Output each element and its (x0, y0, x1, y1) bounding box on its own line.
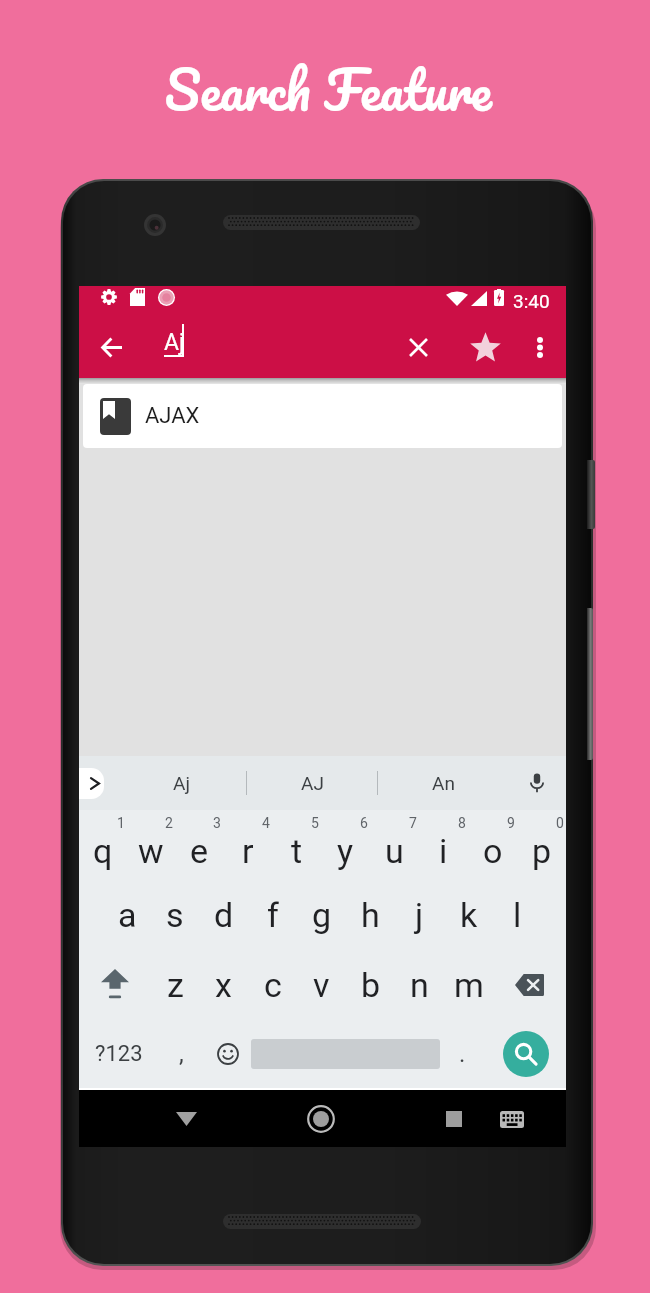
staticText: a (118, 895, 137, 935)
staticText: 9 (507, 815, 515, 831)
button[interactable]: 7 (370, 810, 419, 880)
button[interactable]: 0 (517, 810, 566, 880)
staticText: t (291, 831, 303, 871)
button[interactable]: Favourite (463, 325, 507, 369)
staticText: 3:40 (513, 290, 550, 312)
button[interactable]: ?123 (79, 1020, 159, 1088)
staticText: d (214, 895, 234, 935)
staticText: h (361, 895, 380, 935)
button[interactable]: Backspace (493, 950, 566, 1020)
staticText: k (460, 895, 478, 935)
staticText: b (361, 965, 381, 1005)
button[interactable]: b (346, 950, 395, 1020)
button[interactable]: Hide keyboard (158, 1091, 214, 1147)
button[interactable]: Expand suggestions (79, 768, 104, 799)
button[interactable]: l (493, 880, 542, 950)
staticText: c (264, 965, 282, 1005)
staticText: g (312, 895, 332, 935)
button[interactable]: AJ (247, 756, 377, 810)
staticText: 6 (360, 815, 368, 831)
button[interactable]: 4 (223, 810, 272, 880)
button[interactable]: Voice input (508, 756, 566, 810)
button[interactable]: Shift (79, 950, 151, 1020)
button[interactable]: 8 (419, 810, 468, 880)
staticText: 5 (311, 815, 319, 831)
button[interactable]: f (248, 880, 297, 950)
staticText: 3 (213, 815, 221, 831)
button[interactable]: s (151, 880, 199, 950)
staticText: AJ (301, 772, 324, 794)
button[interactable]: Search (485, 1020, 566, 1088)
button[interactable]: , (159, 1020, 204, 1088)
button[interactable]: n (395, 950, 444, 1020)
button[interactable]: z (151, 950, 199, 1020)
button[interactable]: Aj (117, 756, 246, 810)
staticText: 7 (409, 815, 417, 831)
button[interactable]: Space (251, 1020, 440, 1088)
button[interactable]: d (199, 880, 248, 950)
button[interactable]: 9 (468, 810, 517, 880)
button[interactable]: a (103, 880, 151, 950)
staticText: Aj (173, 772, 190, 794)
staticText: s (166, 895, 184, 935)
staticText: 4 (262, 815, 270, 831)
button[interactable]: h (346, 880, 395, 950)
button[interactable]: 1 (79, 810, 127, 880)
staticText: y (337, 831, 354, 871)
staticText: An (432, 772, 455, 794)
button[interactable]: Recents (426, 1091, 482, 1147)
staticText: . (459, 1040, 466, 1068)
button[interactable]: 3 (175, 810, 223, 880)
staticText: v (313, 965, 330, 1005)
staticText: u (385, 831, 404, 871)
staticText: x (215, 965, 232, 1005)
button[interactable]: j (395, 880, 444, 950)
staticText: 0 (556, 815, 564, 831)
staticText: AJAX (145, 403, 200, 429)
staticText: l (513, 895, 522, 935)
button[interactable]: Back (89, 325, 134, 370)
staticText: w (138, 831, 164, 871)
button[interactable]: 6 (321, 810, 370, 880)
button[interactable]: Home (293, 1091, 349, 1147)
staticText: j (415, 895, 424, 935)
button[interactable]: k (444, 880, 493, 950)
button[interactable]: An (378, 756, 508, 810)
staticText: , (179, 1040, 184, 1068)
staticText: z (167, 965, 184, 1005)
staticText: q (93, 831, 113, 871)
button[interactable]: More options (518, 325, 562, 369)
staticText: m (454, 965, 484, 1005)
button[interactable]: 5 (272, 810, 321, 880)
staticText: i (439, 831, 448, 871)
staticText: 8 (458, 815, 466, 831)
button[interactable]: AJAX (83, 384, 562, 448)
staticText: 2 (165, 815, 173, 831)
staticText: n (410, 965, 429, 1005)
button[interactable]: x (199, 950, 248, 1020)
button[interactable]: g (297, 880, 346, 950)
staticText: 1 (117, 815, 125, 831)
staticText: p (532, 831, 552, 871)
button[interactable]: . (440, 1020, 485, 1088)
staticText: e (190, 831, 209, 871)
button[interactable]: Emoji (204, 1020, 251, 1088)
button[interactable]: v (297, 950, 346, 1020)
button[interactable]: Switch keyboard (484, 1091, 540, 1147)
button[interactable]: Clear (396, 325, 440, 369)
staticText: r (242, 831, 254, 871)
staticText: o (483, 831, 503, 871)
staticText: f (267, 895, 279, 935)
button[interactable]: c (248, 950, 297, 1020)
staticText: Aj (164, 329, 185, 356)
button[interactable]: 2 (127, 810, 175, 880)
staticText: Search Feature (3, 45, 650, 135)
button[interactable]: m (444, 950, 493, 1020)
staticText: ?123 (95, 1041, 143, 1067)
